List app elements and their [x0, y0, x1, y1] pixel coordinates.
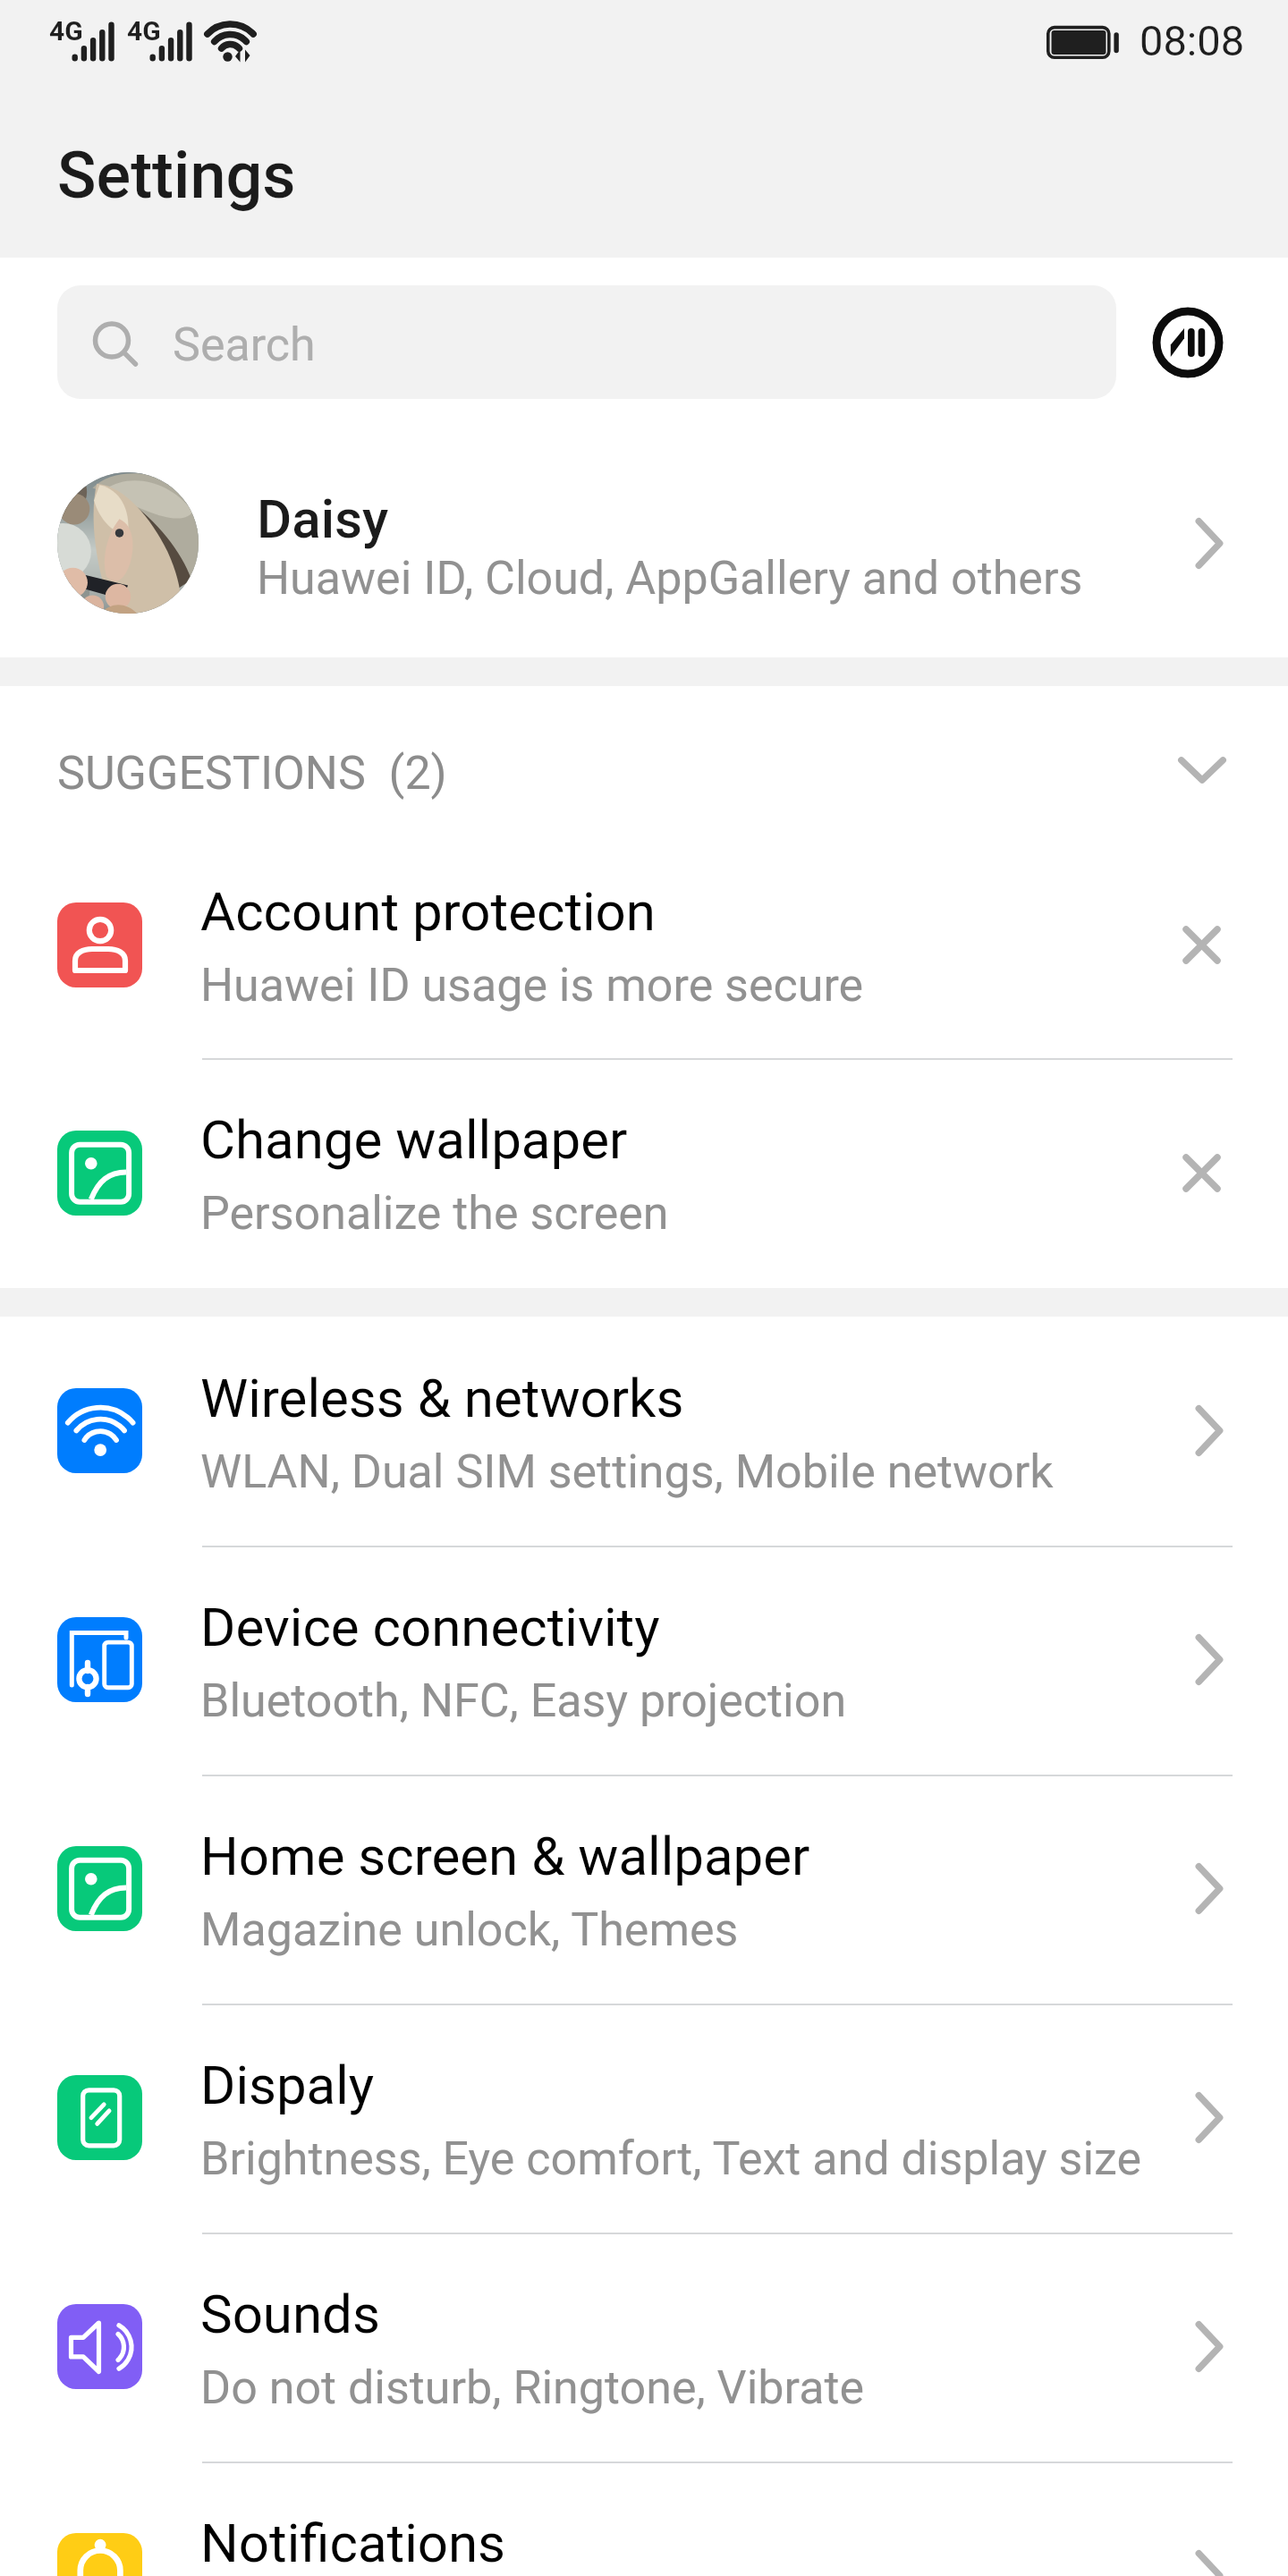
staticText: Do not disturb, Ringtone, Vibrate: [200, 2360, 865, 2415]
staticText: SUGGESTIONS (2): [57, 746, 447, 801]
button[interactable]: Wireless & networks: [0, 1317, 1288, 1546]
staticText: 08:08: [1140, 16, 1245, 65]
button[interactable]: Sounds: [0, 2233, 1288, 2462]
staticText: Sounds: [200, 2283, 380, 2345]
staticText: Change wallpaper: [200, 1108, 628, 1171]
staticText: Home screen & wallpaper: [200, 1825, 810, 1887]
staticText: 4G: [49, 15, 83, 47]
staticText: Settings: [57, 138, 296, 213]
staticText: Account protection: [200, 880, 656, 943]
staticText: Search: [173, 318, 316, 372]
button[interactable]: [0, 399, 1288, 657]
button[interactable]: Dismiss Change wallpaper: [1159, 1131, 1244, 1216]
staticText: Dispaly: [200, 2054, 375, 2116]
staticText: Wireless & networks: [200, 1367, 684, 1429]
staticText: Huawei ID usage is more secure: [200, 958, 864, 1013]
staticText: 4G: [127, 15, 161, 47]
button[interactable]: Change wallpaper: [0, 1058, 1288, 1286]
staticText: Brightness, Eye comfort, Text and displa…: [200, 2131, 1142, 2186]
staticText: WLAN, Dual SIM settings, Mobile network: [200, 1445, 1054, 1499]
button[interactable]: Smart assistant: [1152, 307, 1224, 378]
staticText: Personalize the screen: [200, 1186, 669, 1241]
staticText: Device connectivity: [200, 1596, 660, 1658]
button[interactable]: Account protection: [0, 830, 1288, 1058]
button[interactable]: Dismiss Account protection: [1159, 902, 1244, 987]
button[interactable]: SUGGESTIONS (2): [0, 686, 1288, 830]
staticText: Bluetooth, NFC, Easy projection: [200, 1674, 847, 1728]
staticText: Daisy: [257, 487, 389, 550]
staticText: Magazine unlock, Themes: [200, 1902, 739, 1957]
button[interactable]: Search: [57, 285, 1116, 399]
staticText: Huawei ID, Cloud, AppGallery and others: [257, 551, 1083, 606]
button[interactable]: Home screen & wallpaper: [0, 1775, 1288, 2004]
button[interactable]: Dispaly: [0, 2004, 1288, 2233]
button[interactable]: Device connectivity: [0, 1546, 1288, 1775]
button[interactable]: Notifications: [0, 2462, 1288, 2576]
staticText: Notifications: [200, 2512, 506, 2574]
